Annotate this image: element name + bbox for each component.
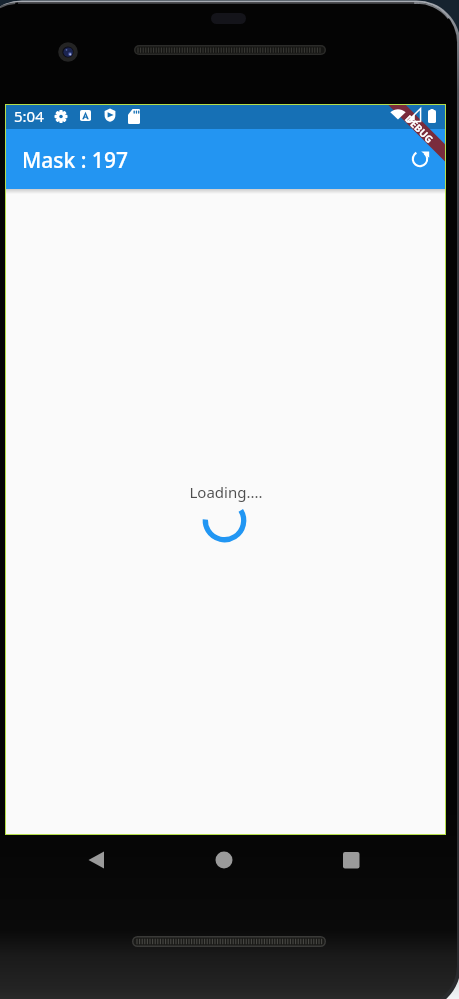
staticText: 5:04 bbox=[14, 106, 44, 126]
staticText: Mask : 197 bbox=[22, 146, 128, 175]
staticText: Loading.... bbox=[189, 482, 263, 502]
staticText: DEBUG bbox=[402, 112, 437, 146]
button[interactable]: Refresh bbox=[396, 135, 444, 183]
